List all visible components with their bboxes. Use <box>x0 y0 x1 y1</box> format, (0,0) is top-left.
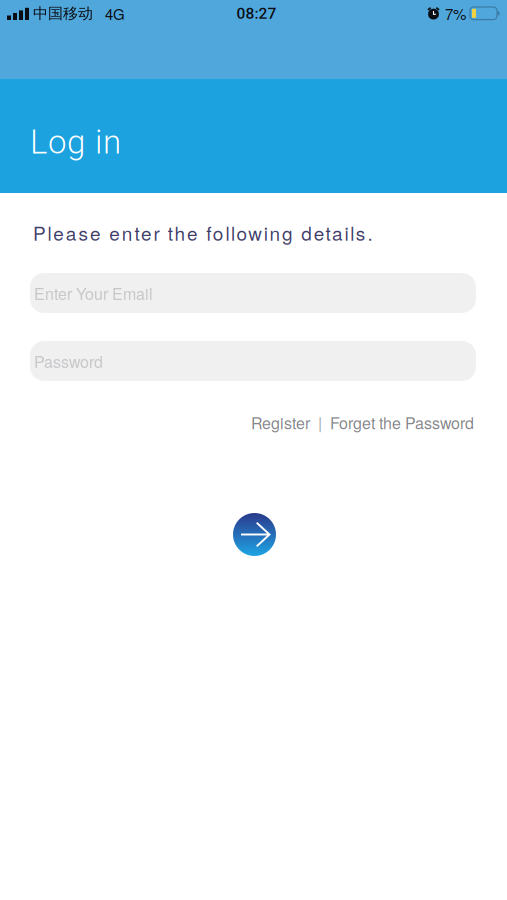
staticText: Register <box>251 411 310 434</box>
button[interactable]: Log in <box>30 123 190 162</box>
staticText: Enter Your Email <box>34 281 153 304</box>
button[interactable] <box>233 513 276 556</box>
staticText: 7% <box>445 3 466 24</box>
button[interactable]: Enter Your Email <box>30 273 476 313</box>
staticText: Log in <box>30 123 121 162</box>
staticText: 中国移动 <box>33 4 93 23</box>
staticText: | <box>318 411 322 434</box>
staticText: Password <box>34 349 103 372</box>
staticText: 08:27 <box>236 4 276 23</box>
staticText: 4G <box>105 3 125 24</box>
button[interactable]: Password <box>30 341 476 381</box>
button[interactable]: Forget the Password <box>330 411 474 434</box>
staticText: Forget the Password <box>330 411 474 434</box>
button[interactable]: Register <box>251 411 310 434</box>
staticText: Please enter the following details. <box>33 219 372 246</box>
